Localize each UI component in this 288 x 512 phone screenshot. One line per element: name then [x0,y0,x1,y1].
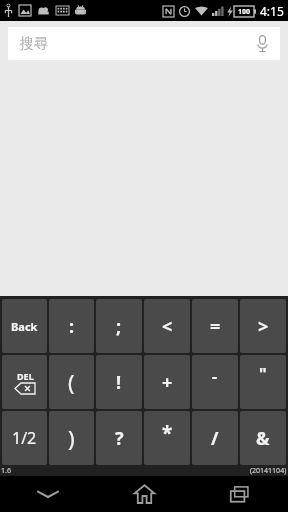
button[interactable]: > [240,299,286,353]
button[interactable]: / [192,411,238,465]
staticText: ! [116,370,122,395]
staticText: * [162,420,173,446]
button[interactable]: Hide keyboard [0,476,96,512]
staticText: : [69,314,75,339]
staticText: + [162,370,173,395]
button[interactable]: < [144,299,190,353]
staticText: = [210,314,221,339]
staticText: 搜尋 [20,35,48,53]
staticText: > [258,314,269,339]
button[interactable]: & [240,411,286,465]
staticText: 100 [238,7,251,17]
staticText: ? [115,426,124,451]
button[interactable]: Voice search [244,27,280,60]
button[interactable]: Delete [2,355,47,409]
button[interactable]: 1/2 [2,411,47,465]
staticText: ( [68,367,75,397]
button[interactable]: ! [96,355,142,409]
button[interactable]: Back [2,299,47,353]
staticText: 4:15 [260,3,284,19]
button[interactable]: - [192,355,238,409]
button[interactable]: Home [96,476,192,512]
button[interactable]: ) [49,411,94,465]
staticText: Back [11,319,38,334]
staticText: / [211,426,219,451]
staticText: < [162,314,173,339]
button[interactable]: * [144,411,190,465]
staticText: ; [116,314,122,339]
staticText: DEL [17,370,34,382]
staticText: - [212,365,218,387]
button[interactable]: = [192,299,238,353]
button[interactable]: ? [96,411,142,465]
button[interactable]: 搜尋 [8,27,280,60]
button[interactable]: ; [96,299,142,353]
staticText: " [259,363,267,385]
staticText: & [256,426,270,451]
button[interactable]: + [144,355,190,409]
staticText: (20141104) [250,466,287,476]
button[interactable]: ( [49,355,94,409]
staticText: 1/2 [12,427,37,449]
button[interactable]: : [49,299,94,353]
button[interactable]: " [240,355,286,409]
button[interactable]: Recent apps [192,476,288,512]
staticText: 1.6 [1,466,11,476]
staticText: ) [68,423,75,453]
